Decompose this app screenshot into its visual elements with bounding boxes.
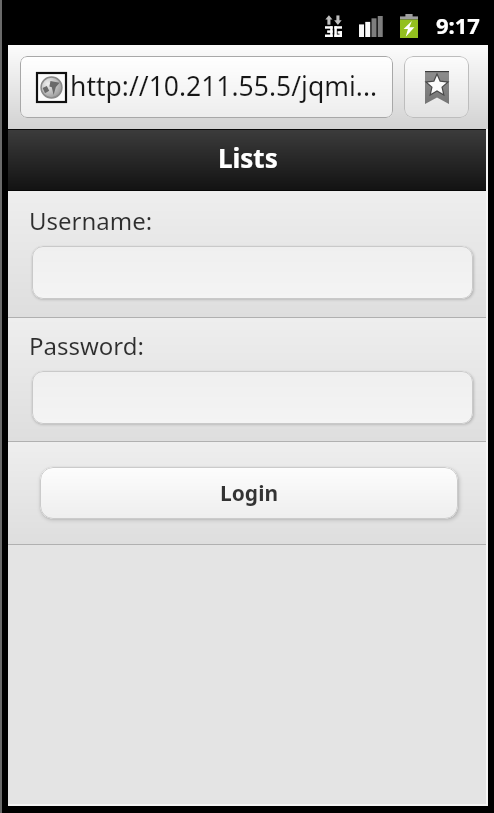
- button[interactable]: http://10.211.55.5/jqmi...: [20, 56, 393, 118]
- staticText: Username:: [29, 204, 153, 237]
- staticText: Lists: [218, 140, 278, 175]
- staticText: http://10.211.55.5/jqmi...: [70, 68, 378, 104]
- button[interactable]: Login: [40, 467, 458, 519]
- staticText: 9:17: [436, 10, 480, 40]
- staticText: Login: [220, 479, 279, 508]
- button[interactable]: Username input: [32, 246, 473, 299]
- button[interactable]: Bookmarks: [404, 56, 469, 118]
- button[interactable]: Password input: [32, 371, 473, 424]
- staticText: Password:: [29, 329, 144, 362]
